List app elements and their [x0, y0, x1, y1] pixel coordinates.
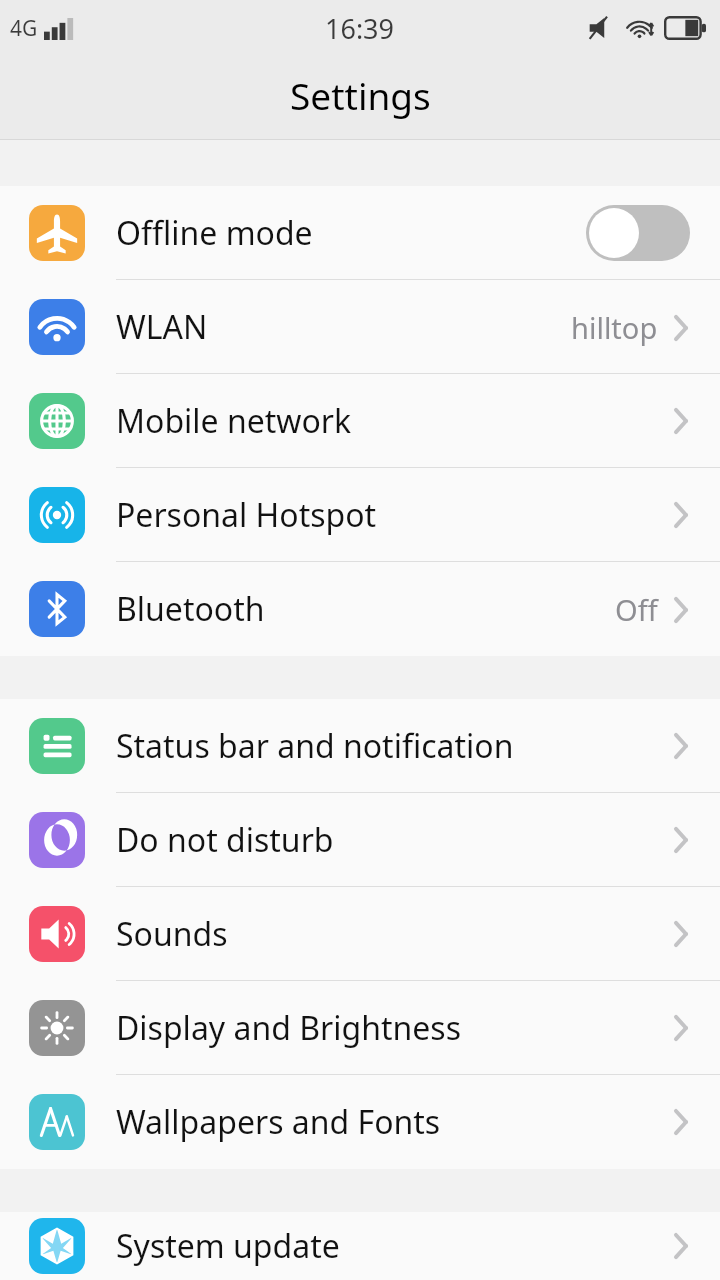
button[interactable]: Offline mode toggle, off	[586, 205, 690, 261]
button[interactable]: Status bar and notification	[0, 699, 720, 793]
staticText: 16:39	[325, 10, 395, 47]
staticText: Status bar and notification	[116, 724, 672, 768]
staticText: Personal Hotspot	[116, 493, 672, 537]
button[interactable]: WLAN	[0, 280, 720, 374]
button[interactable]: Bluetooth	[0, 562, 720, 656]
button[interactable]: Display and Brightness	[0, 981, 720, 1075]
staticText: Mobile network	[116, 399, 672, 443]
button[interactable]: Personal Hotspot	[0, 468, 720, 562]
staticText: WLAN	[116, 305, 571, 349]
staticText: Settings	[290, 70, 431, 120]
button[interactable]: Sounds	[0, 887, 720, 981]
button[interactable]: Offline mode	[0, 186, 720, 280]
button[interactable]: Do not disturb	[0, 793, 720, 887]
staticText: Offline mode	[116, 211, 586, 255]
staticText: System update	[116, 1224, 672, 1268]
staticText: Off	[615, 590, 658, 629]
button[interactable]: Wallpapers and Fonts	[0, 1075, 720, 1169]
staticText: 4G	[10, 14, 38, 43]
staticText: Display and Brightness	[116, 1006, 672, 1050]
button[interactable]: Mobile network	[0, 374, 720, 468]
staticText: Do not disturb	[116, 818, 672, 862]
staticText: Bluetooth	[116, 587, 615, 631]
staticText: hilltop	[571, 308, 658, 347]
staticText: Wallpapers and Fonts	[116, 1100, 672, 1144]
staticText: Sounds	[116, 912, 672, 956]
button[interactable]: System update	[0, 1212, 720, 1280]
